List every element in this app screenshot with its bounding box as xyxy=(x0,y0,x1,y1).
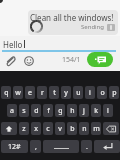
button[interactable]: z xyxy=(19,122,29,135)
button[interactable]: Shift xyxy=(1,122,17,135)
button[interactable]: m xyxy=(91,122,101,135)
staticText: w xyxy=(15,88,21,98)
staticText: e xyxy=(28,88,32,98)
button[interactable]: h xyxy=(67,104,77,117)
button[interactable]: x xyxy=(31,122,41,135)
button[interactable]: k xyxy=(91,104,101,117)
button[interactable]: i xyxy=(85,86,95,99)
button[interactable]: , xyxy=(30,140,41,153)
button[interactable]: Backspace xyxy=(103,122,119,135)
staticText: s xyxy=(22,106,26,116)
staticText: z xyxy=(22,124,26,134)
button[interactable]: Clean all the windows! xyxy=(28,10,118,35)
staticText: 12# xyxy=(8,142,21,152)
button[interactable]: g xyxy=(55,104,65,117)
staticText: x xyxy=(34,124,38,134)
staticText: k xyxy=(94,106,98,116)
button[interactable]: r xyxy=(37,86,47,99)
button[interactable]: Attach file xyxy=(1,52,18,69)
staticText: g xyxy=(58,106,63,116)
staticText: p xyxy=(112,88,117,98)
staticText: l xyxy=(107,106,109,116)
staticText: 154/1 xyxy=(62,55,81,65)
button[interactable]: y xyxy=(61,86,71,99)
staticText: d xyxy=(34,106,39,116)
staticText: u xyxy=(76,88,81,98)
button[interactable]: . xyxy=(81,140,92,153)
button[interactable]: q xyxy=(1,86,11,99)
staticText: m xyxy=(93,124,100,134)
button[interactable]: o xyxy=(97,86,107,99)
staticText: n xyxy=(82,124,87,134)
button[interactable]: Insert emoji xyxy=(20,52,37,69)
button[interactable]: l xyxy=(103,104,113,117)
button[interactable]: d xyxy=(31,104,41,117)
button[interactable]: Enter xyxy=(94,140,120,153)
button[interactable]: p xyxy=(109,86,119,99)
staticText: h xyxy=(70,106,75,116)
button[interactable]: 12# xyxy=(1,140,28,153)
staticText: j xyxy=(83,106,85,116)
staticText: c xyxy=(46,124,50,134)
staticText: q xyxy=(4,88,9,98)
button[interactable]: b xyxy=(67,122,77,135)
button[interactable]: t xyxy=(49,86,59,99)
staticText: o xyxy=(100,88,105,98)
staticText: Clean all the windows! xyxy=(30,12,114,23)
staticText: y xyxy=(64,88,68,98)
staticText: i xyxy=(89,88,91,98)
staticText: b xyxy=(70,124,75,134)
staticText: . xyxy=(86,142,88,152)
button[interactable]: f xyxy=(43,104,53,117)
staticText: , xyxy=(35,142,37,152)
button[interactable]: s xyxy=(19,104,29,117)
staticText: Hello xyxy=(3,39,23,49)
button[interactable]: Space xyxy=(43,140,79,153)
button[interactable]: c xyxy=(43,122,53,135)
button[interactable]: e xyxy=(25,86,35,99)
button[interactable]: a xyxy=(7,104,17,117)
button[interactable]: Send message xyxy=(87,52,113,67)
staticText: v xyxy=(58,124,62,134)
button[interactable]: u xyxy=(73,86,83,99)
button[interactable]: n xyxy=(79,122,89,135)
staticText: r xyxy=(41,88,44,98)
button[interactable]: w xyxy=(13,86,23,99)
staticText: t xyxy=(53,88,56,98)
button[interactable]: j xyxy=(79,104,89,117)
staticText: a xyxy=(10,106,14,116)
staticText: f xyxy=(47,106,50,116)
staticText: Sending xyxy=(81,23,105,31)
button[interactable]: v xyxy=(55,122,65,135)
